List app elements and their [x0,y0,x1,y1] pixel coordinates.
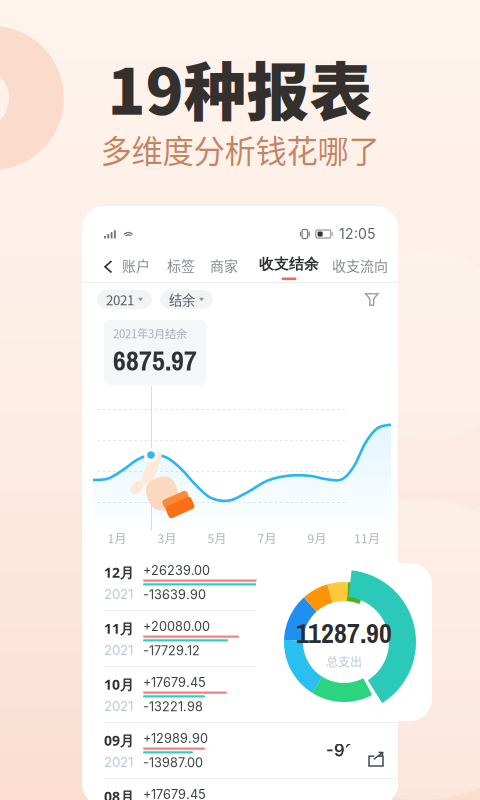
staticText: 12:05 [339,225,376,242]
staticText: -17729.12 [143,643,200,658]
staticText: -13639.90 [143,587,206,602]
staticText: 08月 [104,787,134,800]
button[interactable]: 商家 [210,249,238,283]
staticText: 收支流向 [332,255,388,275]
staticText: 12月 [104,563,134,582]
staticText: 2021 [106,290,134,309]
staticText: +20080.00 [143,619,210,634]
staticText: 1月 [107,529,126,547]
staticText: 结余 [169,290,195,309]
button[interactable]: 12月 [82,555,398,611]
button[interactable]: 10月 [82,667,398,723]
staticText: 09月 [104,731,134,750]
staticText: 多维度分析钱花哪了 [100,127,379,172]
button[interactable]: 收支结余 [259,249,319,283]
staticText: -13987.00 [143,755,203,770]
staticText: 2350.88 [316,628,385,649]
button[interactable]: Back [97,253,119,280]
staticText: 2021年3月结余 [113,325,187,341]
button[interactable]: 结余 [160,290,213,309]
staticText: 3月 [157,529,176,547]
staticText: +17679.45 [143,675,206,690]
staticText: 11月 [354,529,380,547]
staticText: 收支结余 [259,255,319,273]
button[interactable]: 08月 [82,779,398,800]
staticText: 总支出 [326,653,362,670]
staticText: -997.10 [326,740,385,761]
staticText: +26239.00 [143,563,210,578]
button[interactable]: 标签 [167,249,195,283]
staticText: -13221.98 [143,699,203,714]
staticText: 10月 [104,675,134,694]
staticText: 19种报表 [107,42,372,133]
staticText: 6875.97 [113,341,197,379]
staticText: 账户 [122,255,150,275]
staticText: +17679.45 [143,787,206,800]
button[interactable]: Filter [360,289,383,310]
staticText: 商家 [210,255,238,275]
button[interactable]: Share [342,742,398,776]
staticText: 9月 [307,529,326,547]
staticText: 7月 [257,529,276,547]
button[interactable]: 2021 [97,290,152,309]
staticText: 2021 [104,642,133,658]
staticText: 11月 [104,619,134,638]
staticText: 12599.10 [315,572,385,593]
staticText: +12989.90 [143,731,208,746]
button[interactable]: 账户 [122,249,150,283]
staticText: 2021 [104,586,133,602]
button[interactable]: 收支流向 [332,249,388,283]
staticText: 2021 [104,698,133,714]
staticText: 4457.47 [319,684,385,705]
staticText: 标签 [167,255,195,275]
staticText: 2021 [104,754,133,770]
button[interactable]: 11月 [82,611,398,667]
button[interactable]: 09月 [82,723,398,779]
staticText: 11287.90 [296,614,392,652]
staticText: 5月 [207,529,226,547]
